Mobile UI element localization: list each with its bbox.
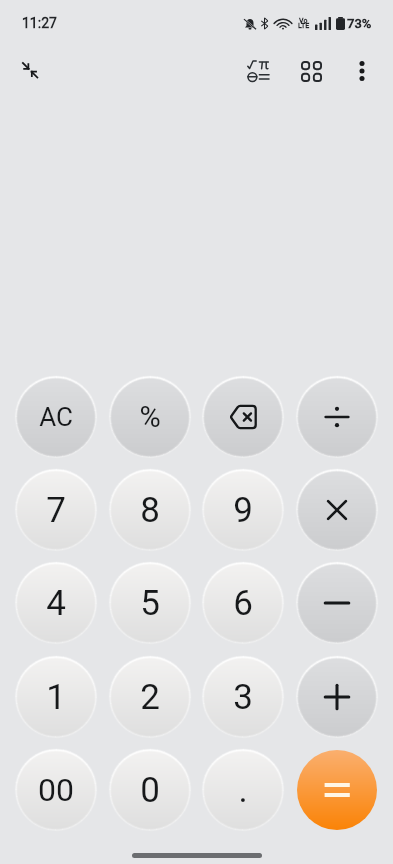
button[interactable]: 6	[203, 563, 283, 643]
button[interactable]: Divide	[297, 377, 377, 457]
button[interactable]: 2	[110, 657, 190, 737]
button[interactable]: %	[110, 377, 190, 457]
button[interactable]: Subtract	[297, 563, 377, 643]
button[interactable]: 00	[16, 750, 96, 830]
staticText: 9	[233, 490, 253, 531]
staticText: AC	[39, 402, 73, 432]
staticText: 0	[140, 770, 160, 811]
staticText: 73%	[347, 16, 372, 31]
staticText: 2	[140, 677, 160, 718]
staticText: %	[139, 400, 161, 434]
staticText: 7	[46, 490, 66, 531]
button[interactable]: Multiply	[297, 470, 377, 550]
staticText: 00	[38, 771, 74, 809]
button[interactable]: AC	[16, 377, 96, 457]
staticText: 8	[140, 490, 160, 531]
button[interactable]: Collapse keypad	[11, 52, 49, 90]
button[interactable]: Calculation history	[289, 49, 333, 93]
staticText: 6	[233, 583, 253, 624]
staticText: 1	[46, 677, 66, 718]
button[interactable]: 5	[110, 563, 190, 643]
button[interactable]: .	[203, 750, 283, 830]
button[interactable]: Add	[297, 657, 377, 737]
button[interactable]: Backspace	[203, 377, 283, 457]
button[interactable]: Scientific calculator	[237, 49, 281, 93]
staticText: 3	[233, 677, 253, 718]
staticText: 4	[46, 583, 66, 624]
staticText: 11:27	[22, 15, 57, 31]
button[interactable]: Equals	[297, 750, 377, 830]
staticText: LTE	[298, 22, 310, 30]
staticText: Vo	[299, 17, 308, 25]
button[interactable]: 3	[203, 657, 283, 737]
button[interactable]: 1	[16, 657, 96, 737]
button[interactable]: 7	[16, 470, 96, 550]
staticText: .	[238, 770, 248, 811]
button[interactable]: More options	[340, 49, 384, 93]
button[interactable]: 8	[110, 470, 190, 550]
button[interactable]: 0	[110, 750, 190, 830]
button[interactable]: 4	[16, 563, 96, 643]
button[interactable]: 9	[203, 470, 283, 550]
staticText: 5	[140, 583, 160, 624]
